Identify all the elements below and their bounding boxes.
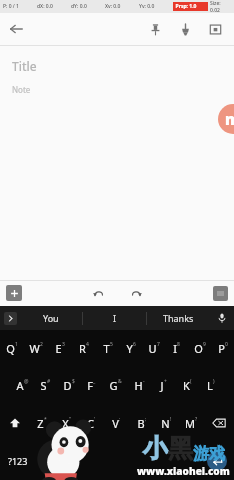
staticText: dX: 0.0 [37,3,53,10]
button[interactable]: L [199,367,223,404]
staticText: Title [12,58,37,74]
button[interactable]: J [151,367,175,404]
button[interactable]: X [54,404,79,442]
button[interactable]: O [188,330,211,367]
staticText: Prsp: 1.0 [173,3,197,10]
staticText: K [183,378,190,393]
staticText: F [87,378,93,393]
button[interactable]: Back [0,13,32,45]
staticText: W [29,341,40,356]
staticText: 6 [133,341,136,348]
button[interactable]: Z [30,404,54,442]
staticText: 0 [225,341,228,348]
button[interactable]: Archive [200,14,230,44]
button[interactable]: Voice input [210,306,234,330]
button[interactable]: T [96,330,119,367]
button[interactable]: Redo [124,281,148,305]
staticText: 小 [143,433,168,464]
button[interactable]: S [34,367,57,404]
staticText: T [103,341,110,356]
button[interactable]: W [24,330,48,367]
staticText: Y [126,341,133,356]
button[interactable]: Undo [86,281,110,305]
staticText: R [79,341,86,356]
button[interactable]: Q [0,330,24,367]
button[interactable]: B [129,404,154,442]
button[interactable]: Enter [200,442,234,480]
button[interactable]: E [48,330,72,367]
staticText: 7 [157,341,160,348]
staticText: Yv: 0.0 [139,3,155,10]
button[interactable]: Symbols [0,442,36,480]
button[interactable]: Add [6,285,22,301]
button[interactable]: Space [36,442,200,480]
button[interactable]: G [103,367,127,404]
staticText: m [225,109,234,129]
button[interactable]: Shift [0,404,30,442]
staticText: Q [6,341,15,356]
staticText: 2 [40,341,43,348]
staticText: H [134,378,143,393]
button[interactable]: Y [119,330,142,367]
button[interactable]: P [211,330,234,367]
staticText: www.xiaohei.com [137,464,230,478]
staticText: 1 [15,341,18,348]
button[interactable]: I [83,306,146,330]
staticText: dY: 0.0 [71,3,87,10]
button[interactable]: Backspace [204,404,234,442]
button[interactable]: F [80,367,103,404]
staticText: You [43,312,59,324]
staticText: ) [213,378,215,385]
button[interactable]: C [79,404,104,442]
button[interactable]: R [72,330,96,367]
staticText: # [47,378,51,385]
staticText: V [112,416,119,431]
staticText: ! [170,416,172,423]
staticText: ; [145,416,147,423]
staticText: G [109,378,118,393]
staticText: L [207,378,213,393]
button[interactable]: M [179,404,204,442]
button[interactable]: A [11,367,34,404]
staticText: ' [94,416,96,423]
staticText: I [173,341,177,356]
staticText: 游戏 [193,444,225,464]
staticText: _ [93,378,96,385]
button[interactable]: Thanks [147,306,210,330]
staticText: ? [195,416,198,423]
staticText: E [55,341,62,356]
button[interactable]: Change colour [170,14,200,44]
staticText: @ [24,378,29,385]
button[interactable]: V [104,404,129,442]
button[interactable]: More options [213,286,228,301]
staticText: C [87,416,94,431]
button[interactable]: K [175,367,199,404]
staticText: + [164,378,167,385]
button[interactable]: I [165,330,188,367]
staticText: 9 [203,341,206,348]
button[interactable]: Expand suggestions [0,306,20,330]
staticText: - [143,378,145,385]
staticText: Size: 0.02 [210,0,231,13]
staticText: ?123 [8,455,28,467]
staticText: A [16,378,24,393]
staticText: J [160,378,164,393]
button[interactable]: You [20,306,82,330]
button[interactable]: N [154,404,179,442]
button[interactable]: H [127,367,151,404]
staticText: 3 [62,341,65,348]
staticText: * [44,416,47,423]
staticText: 4 [86,341,89,348]
staticText: & [118,378,122,385]
staticText: S [40,378,47,393]
staticText: P: 0 / 1 [3,3,19,10]
staticText: ( [190,378,192,385]
button[interactable]: D [57,367,80,404]
staticText: $ [72,378,75,385]
staticText: I [113,312,117,324]
staticText: Thanks [163,312,194,324]
staticText: : [119,416,121,423]
staticText: 黑 [168,433,193,464]
button[interactable]: Pin note [140,14,170,44]
button[interactable]: U [142,330,165,367]
